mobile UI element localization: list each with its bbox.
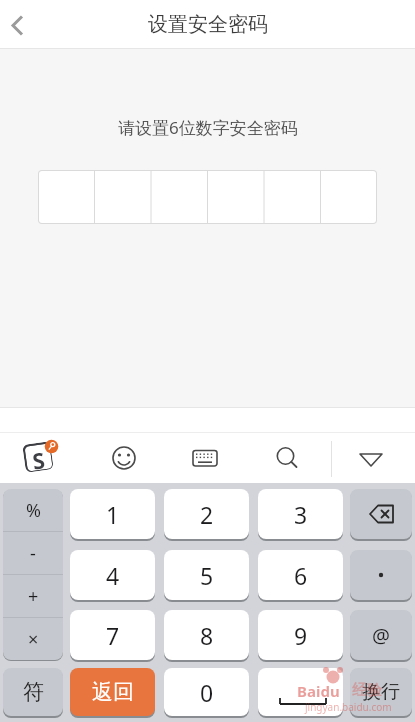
button[interactable]	[350, 550, 412, 600]
button[interactable]: 6	[258, 550, 343, 600]
button[interactable]: 9	[258, 610, 343, 660]
button[interactable]: -	[3, 532, 63, 574]
button[interactable]: 4	[70, 550, 155, 600]
staticText: jingyan.baidu.com	[305, 700, 392, 714]
button[interactable]	[103, 437, 145, 479]
staticText: 1	[106, 499, 120, 530]
staticText: 5	[200, 560, 214, 591]
staticText: 7	[106, 620, 120, 651]
button[interactable]: 1	[70, 489, 155, 539]
button[interactable]: 返回	[70, 668, 155, 716]
staticText: 9	[294, 620, 308, 651]
button[interactable]	[38, 170, 377, 224]
button[interactable]	[349, 437, 393, 481]
staticText: ×	[28, 627, 39, 652]
button[interactable]: S	[18, 437, 62, 479]
button[interactable]: 2	[164, 489, 249, 539]
staticText: 返回	[92, 679, 134, 705]
staticText: 6	[294, 560, 308, 591]
button[interactable]	[266, 437, 308, 479]
staticText: 换行	[362, 680, 400, 704]
button[interactable]: %	[3, 489, 63, 531]
staticText: @	[372, 622, 390, 649]
button[interactable]	[0, 0, 44, 48]
button[interactable]	[258, 668, 343, 716]
button[interactable]	[184, 437, 226, 479]
staticText: 2	[200, 499, 214, 530]
staticText: S	[30, 444, 47, 471]
staticText: 4	[106, 560, 120, 591]
staticText: 设置安全密码	[148, 12, 268, 37]
button[interactable]: 8	[164, 610, 249, 660]
button[interactable]: 5	[164, 550, 249, 600]
button[interactable]: ×	[3, 618, 63, 660]
staticText: 3	[294, 499, 308, 530]
button[interactable]: 换行	[350, 668, 412, 716]
button[interactable]: 7	[70, 610, 155, 660]
staticText: 请设置6位数字安全密码	[118, 116, 298, 139]
button[interactable]: +	[3, 575, 63, 617]
staticText: 8	[200, 620, 214, 651]
button[interactable]: 符	[3, 668, 63, 716]
staticText: %	[26, 498, 41, 523]
button[interactable]: 0	[164, 668, 249, 716]
staticText: +	[28, 584, 39, 609]
staticText: Baidu	[297, 681, 340, 701]
staticText: 0	[200, 677, 214, 708]
button[interactable]: @	[350, 610, 412, 660]
button[interactable]: 3	[258, 489, 343, 539]
staticText: -	[30, 541, 36, 566]
staticText: 符	[23, 679, 44, 705]
button[interactable]	[350, 489, 412, 539]
staticText: 经验	[352, 681, 382, 700]
